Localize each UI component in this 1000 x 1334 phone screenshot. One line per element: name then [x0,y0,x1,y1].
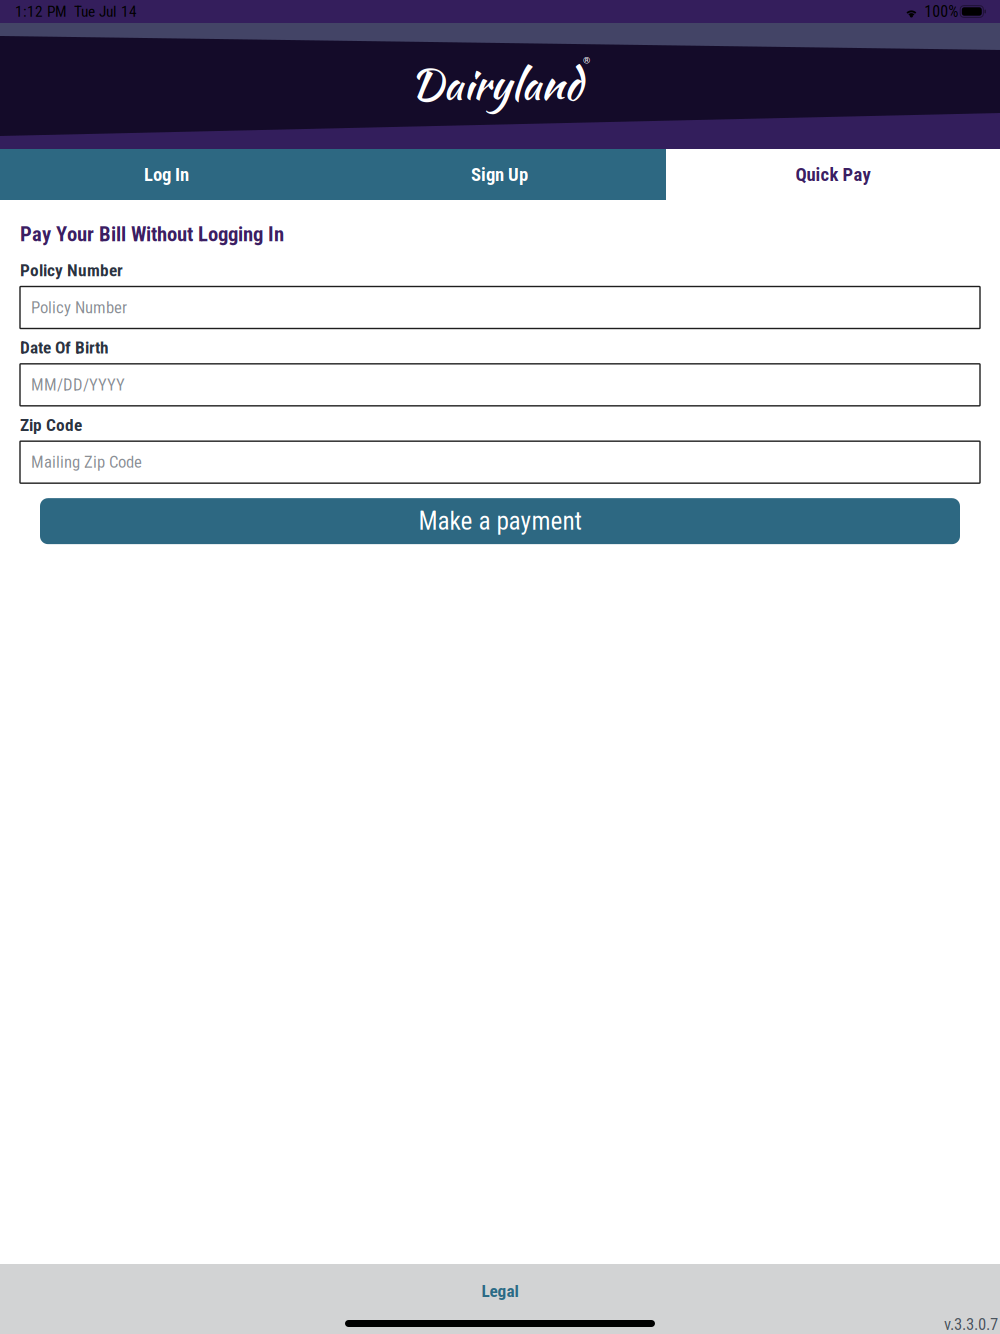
staticText: Legal [481,1281,518,1301]
staticText: Policy Number [31,298,127,317]
button[interactable]: MM/DD/YYYY [20,364,980,406]
staticText: MM/DD/YYYY [31,375,125,395]
button[interactable]: Quick Pay [666,149,1000,200]
button[interactable]: Sign Up [333,149,666,200]
staticText: v.3.3.0.7 [944,1314,998,1334]
staticText: Dairyland [410,53,582,115]
staticText: Log In [144,164,189,185]
staticText: 1:12 PM [15,2,67,20]
staticText: Tue Jul 14 [67,2,137,20]
button[interactable]: Make a payment [40,498,960,544]
staticText: Sign Up [471,164,528,185]
button[interactable]: Policy Number [20,286,980,328]
staticText: Date Of Birth [20,337,109,358]
staticText: ® [583,55,590,66]
button[interactable]: Legal [465,1264,534,1305]
staticText: Mailing Zip Code [31,452,142,472]
staticText: Zip Code [20,415,82,435]
staticText: Pay Your Bill Without Logging In [20,222,284,246]
staticText: Policy Number [20,260,123,280]
button[interactable]: Log In [0,149,333,200]
staticText: Quick Pay [795,164,870,185]
button[interactable]: Mailing Zip Code [20,441,980,483]
staticText: 100% [924,2,958,21]
staticText: Make a payment [418,506,581,536]
